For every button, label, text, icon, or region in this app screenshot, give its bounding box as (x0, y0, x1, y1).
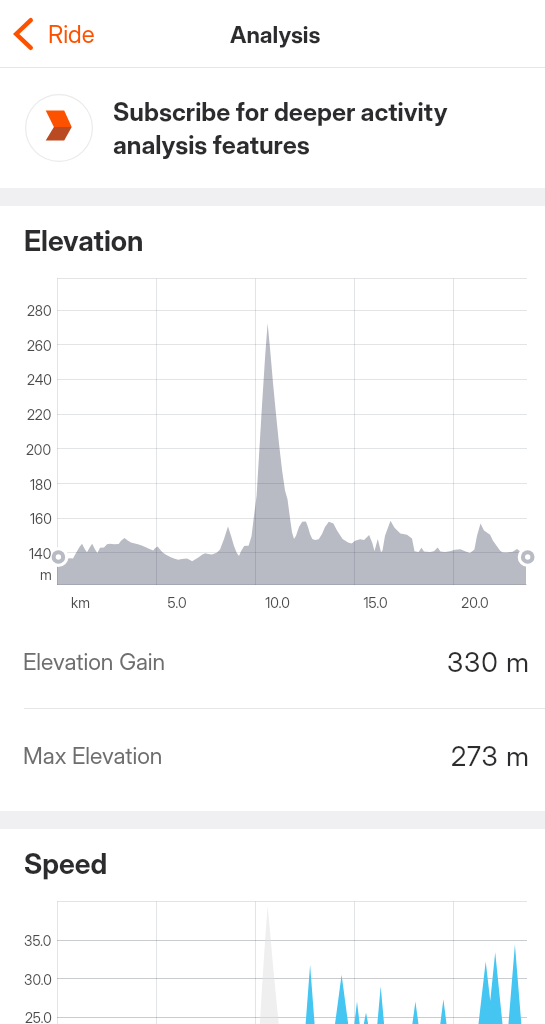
staticText: Speed (24, 847, 108, 881)
staticText: 25.0 (25, 1009, 52, 1024)
staticText: Ride (48, 20, 95, 49)
button[interactable]: Subscribe for deeper activity analysis f… (0, 68, 545, 188)
other: Back (14, 18, 33, 50)
staticText: Subscribe for deeper activity analysis f… (113, 97, 521, 160)
staticText: km (71, 594, 90, 611)
staticText: 220 (27, 406, 52, 423)
staticText: 330 m (447, 646, 530, 679)
staticText: 180 (30, 476, 52, 493)
staticText: 20.0 (461, 594, 489, 611)
staticText: m (40, 566, 52, 583)
staticText: Analysis (230, 21, 321, 49)
staticText: 273 m (451, 740, 530, 773)
staticText: 280 (27, 302, 52, 319)
staticText: 15.0 (363, 594, 388, 611)
button[interactable]: Back (0, 12, 109, 56)
button[interactable]: Elevation Gain (0, 615, 545, 709)
staticText: Max Elevation (23, 742, 163, 770)
staticText: 160 (30, 510, 52, 527)
staticText: Elevation (24, 224, 144, 258)
staticText: 10.0 (265, 594, 290, 611)
button[interactable]: Max Elevation (0, 709, 545, 803)
staticText: 30.0 (24, 971, 52, 988)
staticText: 260 (27, 337, 52, 354)
staticText: 240 (27, 371, 52, 388)
staticText: 35.0 (24, 932, 52, 949)
staticText: 140 (29, 545, 52, 562)
staticText: 200 (26, 441, 52, 458)
staticText: 5.0 (167, 594, 187, 611)
staticText: Elevation Gain (23, 648, 166, 676)
